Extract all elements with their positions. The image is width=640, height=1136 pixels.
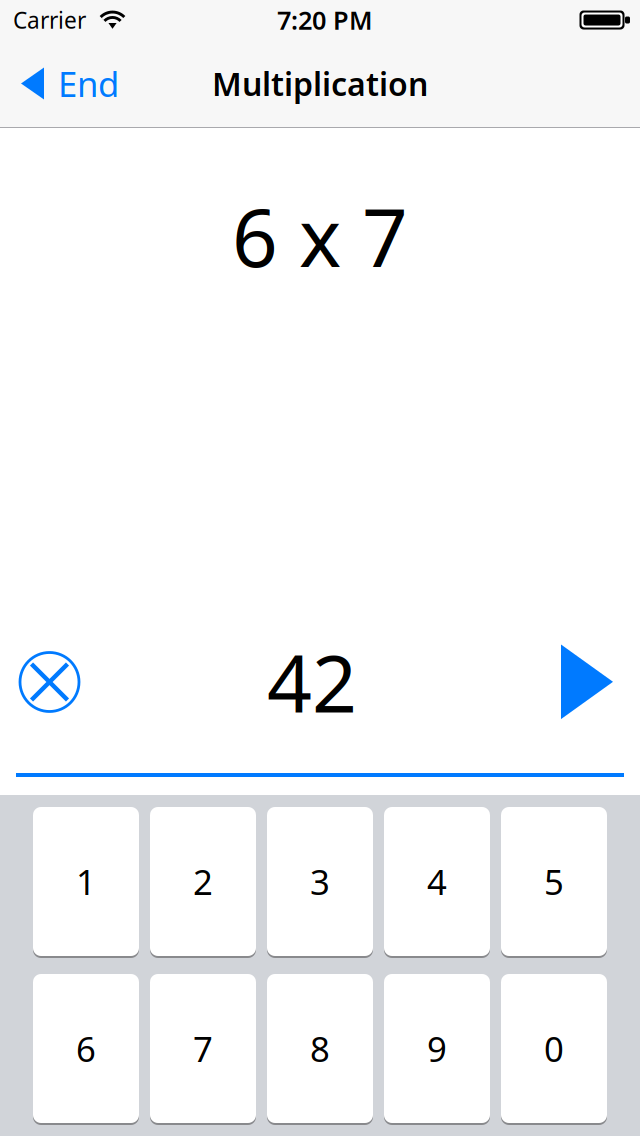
staticText: 6 x 7 [232,183,408,289]
staticText: 0 [544,1025,564,1071]
button[interactable]: Answer 42 [170,642,470,722]
button[interactable]: 5 [501,807,607,956]
staticText: 1 [76,858,96,904]
staticText: 5 [544,858,564,904]
button[interactable]: 7 [150,974,256,1123]
button[interactable]: End [0,50,135,116]
staticText: Carrier [13,5,86,35]
button[interactable]: 9 [384,974,490,1123]
staticText: 4 [427,858,447,904]
staticText: 9 [427,1025,447,1071]
staticText: 3 [310,858,330,904]
staticText: End [58,60,119,106]
staticText: 7:20 PM [277,3,373,37]
button[interactable]: 8 [267,974,373,1123]
button[interactable]: 4 [384,807,490,956]
staticText: Multiplication [212,62,428,105]
button[interactable]: 2 [150,807,256,956]
button[interactable]: 0 [501,974,607,1123]
button[interactable]: Clear [20,652,79,711]
staticText: 6 [76,1025,96,1071]
staticText: 8 [310,1025,330,1071]
button[interactable]: 6 [33,974,139,1123]
staticText: 42 [267,630,357,734]
button[interactable]: 3 [267,807,373,956]
button[interactable]: Next [561,644,613,719]
staticText: 7 [193,1025,213,1071]
button[interactable]: 1 [33,807,139,956]
staticText: 2 [193,858,213,904]
